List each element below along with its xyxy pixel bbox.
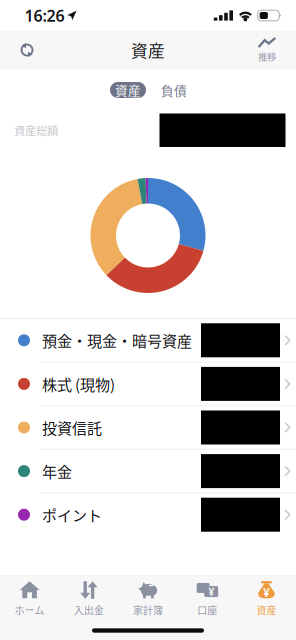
button[interactable]: 年金 <box>0 450 296 492</box>
button[interactable]: 家計簿 <box>118 576 178 621</box>
button[interactable]: 負債 <box>157 82 191 98</box>
button[interactable]: 入出金 <box>59 576 118 621</box>
staticText: ポイント <box>42 504 102 526</box>
staticText: ¥ <box>208 584 214 599</box>
button[interactable]: ホーム <box>0 576 59 621</box>
staticText: 投資信託 <box>42 417 102 438</box>
button[interactable]: ポイント <box>0 493 296 536</box>
staticText: ¥ <box>263 584 270 600</box>
staticText: 資産 <box>115 81 141 99</box>
button[interactable]: 更新 <box>6 31 48 69</box>
button[interactable]: 投資信託 <box>0 406 296 449</box>
staticText: 資産総額 <box>14 122 58 138</box>
button[interactable]: 資産 <box>110 82 146 98</box>
staticText: 16:26 <box>24 5 64 26</box>
staticText: 株式 (現物) <box>42 373 115 395</box>
staticText: ホーム <box>15 603 45 617</box>
staticText: 資産 <box>131 38 165 62</box>
staticText: 口座 <box>197 603 217 617</box>
staticText: 推移 <box>258 50 276 63</box>
button[interactable]: 株式 (現物) <box>0 363 296 405</box>
staticText: 預金・現金・暗号資産 <box>42 329 192 351</box>
button[interactable]: 預金・現金・暗号資産 <box>0 319 296 362</box>
staticText: 資産 <box>256 603 276 617</box>
staticText: 入出金 <box>74 603 104 617</box>
button[interactable]: ¥ <box>178 576 237 621</box>
staticText: 負債 <box>161 81 187 99</box>
staticText: 家計簿 <box>133 603 163 617</box>
button[interactable]: 推移 <box>244 31 290 69</box>
button[interactable]: ¥ <box>237 576 296 621</box>
staticText: 年金 <box>42 460 72 482</box>
